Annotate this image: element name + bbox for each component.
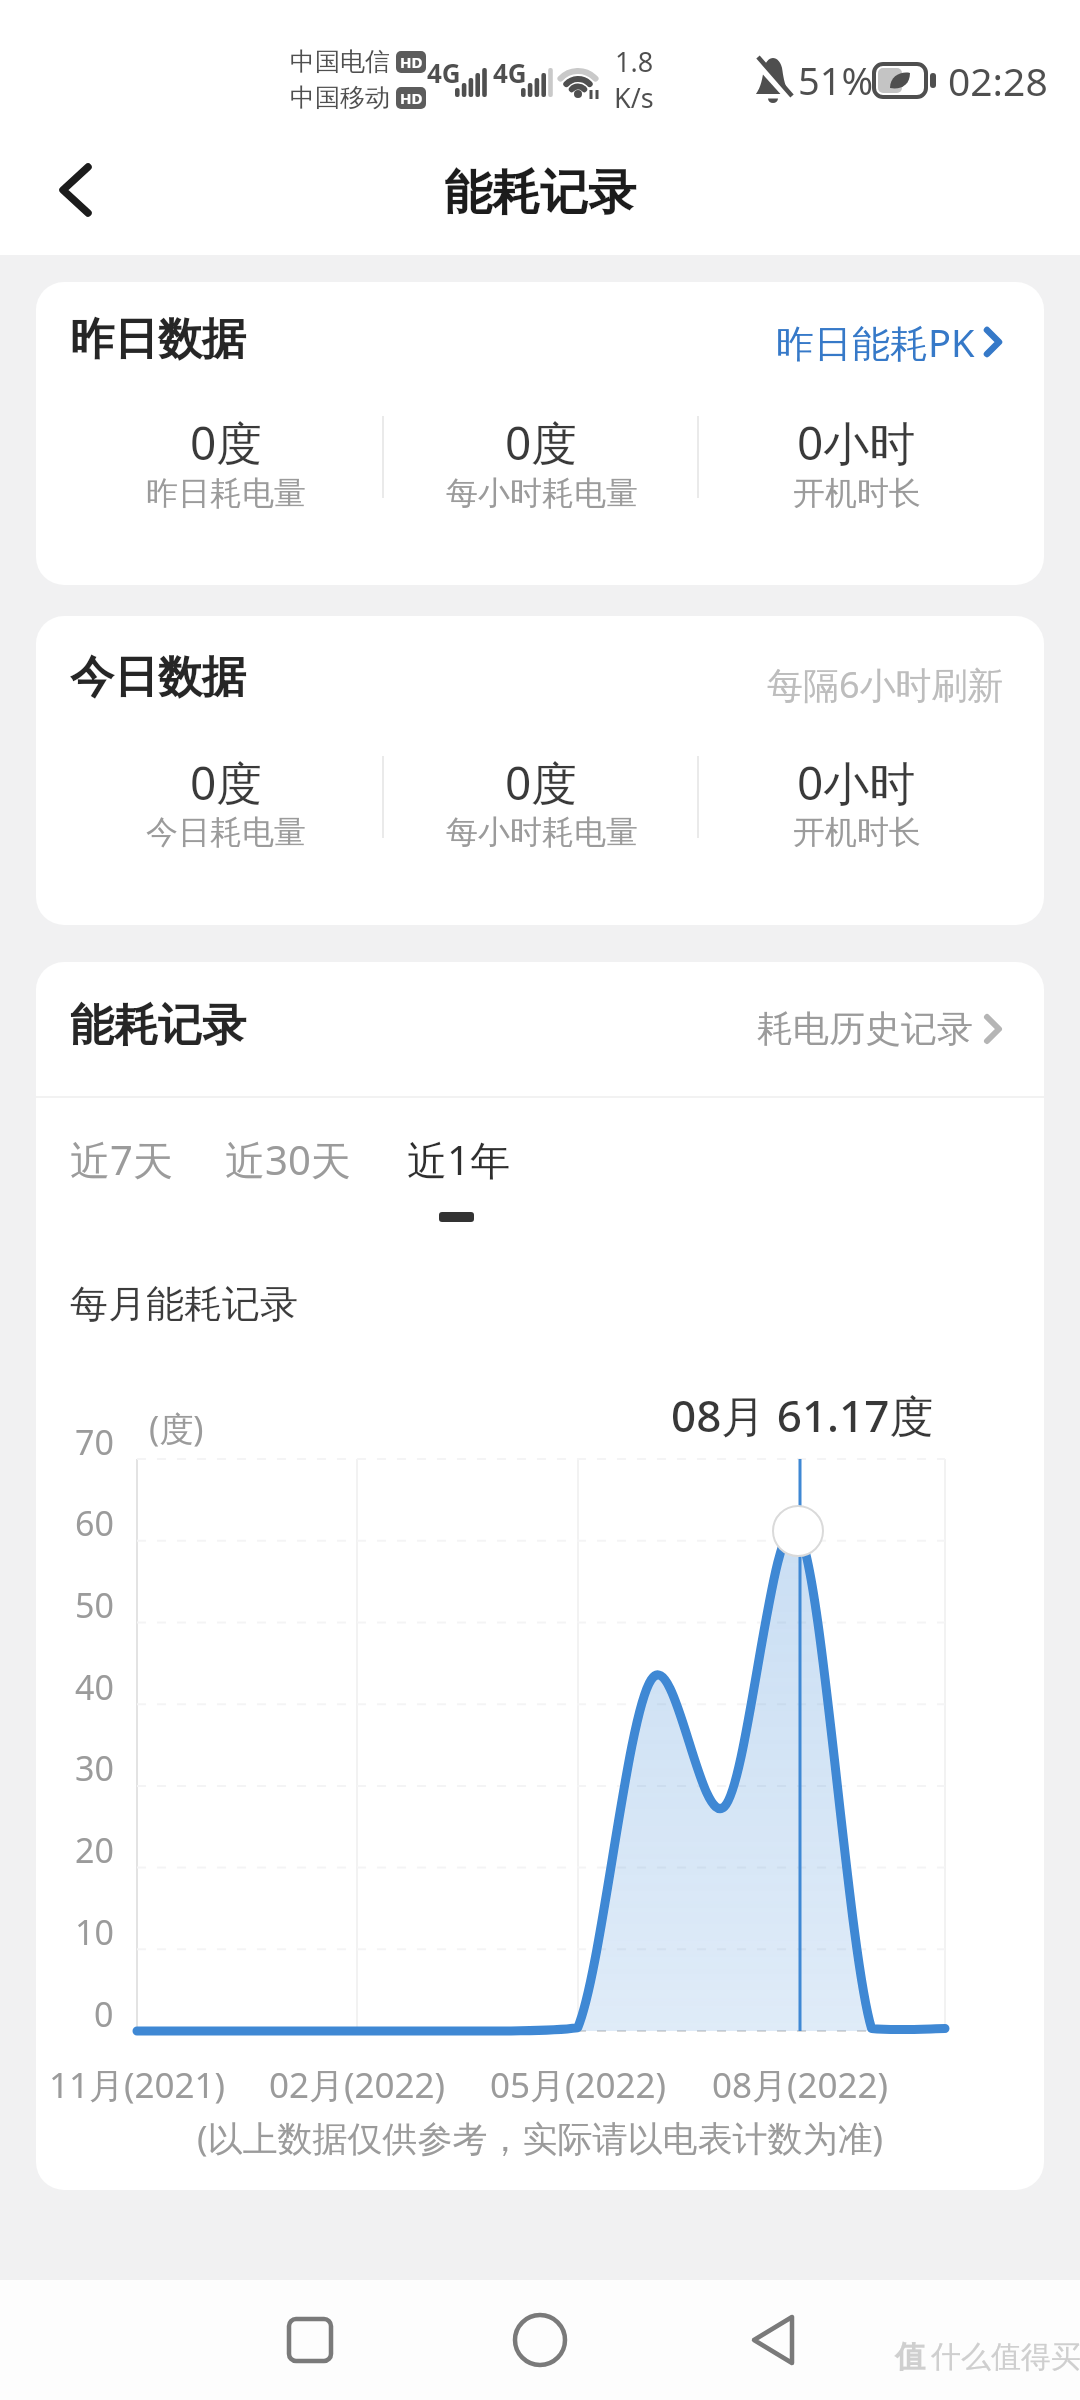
staticText: 50 <box>75 1582 114 1628</box>
button[interactable] <box>270 2300 350 2380</box>
staticText: 02月(2022) <box>269 2061 446 2109</box>
staticText: 0度 <box>505 751 578 814</box>
staticText: 昨日耗电量 <box>146 473 306 513</box>
staticText: 什么值得买 <box>931 2338 1080 2376</box>
staticText: 每隔6小时刷新 <box>767 660 1004 709</box>
staticText: 20 <box>75 1827 114 1873</box>
staticText: 今日耗电量 <box>146 812 306 852</box>
staticText: 中国电信 <box>290 46 390 77</box>
staticText: 0度 <box>505 411 578 474</box>
staticText: 05月(2022) <box>490 2061 667 2109</box>
button[interactable]: 耗电历史记录 <box>757 1006 1004 1051</box>
staticText: 今日数据 <box>70 650 246 705</box>
staticText: HD <box>400 52 423 72</box>
staticText: 4G <box>427 55 461 90</box>
staticText: 0 <box>94 1991 114 2037</box>
staticText: 昨日数据 <box>70 312 246 367</box>
staticText: 每小时耗电量 <box>446 812 638 852</box>
staticText: 4G <box>493 55 527 90</box>
button[interactable]: 近7天 <box>70 1132 173 1187</box>
button[interactable] <box>736 2300 816 2380</box>
staticText: 中国移动 <box>290 82 390 113</box>
staticText: 51% <box>798 54 874 106</box>
staticText: 0小时 <box>797 411 916 474</box>
staticText: 02:28 <box>948 54 1048 107</box>
staticText: K/s <box>614 79 654 116</box>
staticText: 近30天 <box>225 1132 351 1187</box>
staticText: HD <box>400 88 423 108</box>
button[interactable] <box>40 155 110 225</box>
staticText: 每月能耗记录 <box>70 1280 298 1328</box>
staticText: 近1年 <box>407 1132 510 1187</box>
staticText: (以上数据仅供参考，实际请以电表计数为准) <box>197 2114 883 2162</box>
button[interactable]: 近1年 <box>407 1132 510 1187</box>
button[interactable]: 近30天 <box>225 1132 351 1187</box>
button[interactable]: 昨日能耗PK <box>776 316 1004 368</box>
staticText: 昨日能耗PK <box>776 316 975 368</box>
staticText: 耗电历史记录 <box>757 1006 973 1051</box>
staticText: 开机时长 <box>793 473 921 513</box>
staticText: 0度 <box>190 751 263 814</box>
staticText: 40 <box>75 1664 114 1710</box>
staticText: 开机时长 <box>793 812 921 852</box>
staticText: 1.8 <box>615 43 654 80</box>
staticText: 70 <box>75 1419 114 1465</box>
staticText: 值 <box>895 2338 925 2376</box>
staticText: 30 <box>75 1745 114 1791</box>
staticText: 每小时耗电量 <box>446 473 638 513</box>
staticText: (度) <box>149 1405 204 1451</box>
staticText: 能耗记录 <box>444 163 636 223</box>
staticText: 11月(2021) <box>49 2061 226 2109</box>
staticText: 08月 61.17度 <box>671 1385 934 1445</box>
staticText: 08月(2022) <box>712 2061 889 2109</box>
staticText: 0度 <box>190 411 263 474</box>
staticText: 10 <box>75 1909 114 1955</box>
staticText: 60 <box>75 1500 114 1546</box>
staticText: 0小时 <box>797 751 916 814</box>
staticText: 近7天 <box>70 1132 173 1187</box>
staticText: 能耗记录 <box>70 998 246 1053</box>
button[interactable] <box>500 2300 580 2380</box>
